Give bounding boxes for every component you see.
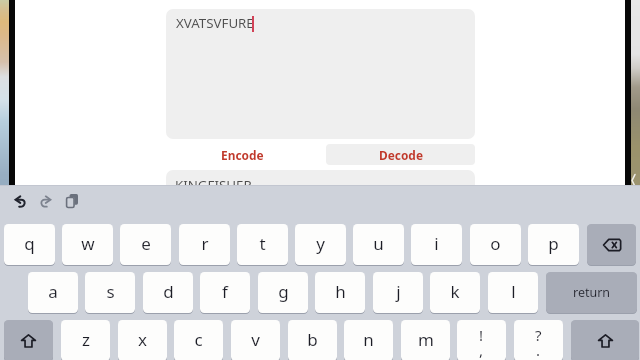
button[interactable]: Return: [546, 272, 637, 313]
button[interactable]: Shift: [4, 320, 53, 360]
staticText: i: [434, 232, 439, 255]
staticText: f: [222, 280, 228, 303]
staticText: g: [278, 280, 289, 303]
button[interactable]: z: [61, 320, 110, 360]
button[interactable]: f: [200, 272, 250, 313]
button[interactable]: j: [373, 272, 423, 313]
button[interactable]: v: [231, 320, 280, 360]
button[interactable]: u: [353, 224, 404, 265]
staticText: l: [511, 280, 516, 303]
button[interactable]: Paste: [66, 194, 78, 208]
button[interactable]: k: [430, 272, 480, 313]
staticText: ?: [535, 325, 542, 345]
staticText: h: [335, 280, 346, 303]
button[interactable]: a: [28, 272, 78, 313]
staticText: !: [479, 325, 484, 345]
button[interactable]: d: [143, 272, 193, 313]
staticText: w: [81, 232, 95, 255]
staticText: z: [82, 328, 90, 351]
staticText: b: [307, 328, 318, 351]
staticText: v: [251, 328, 260, 351]
staticText: u: [373, 232, 384, 255]
button[interactable]: c: [174, 320, 223, 360]
button[interactable]: Shift: [571, 320, 639, 360]
button[interactable]: p: [528, 224, 579, 265]
button[interactable]: KINGFISHER: [166, 170, 475, 215]
button[interactable]: Back: [631, 174, 636, 187]
button[interactable]: !: [457, 320, 506, 360]
staticText: .: [536, 340, 541, 360]
button[interactable]: i: [411, 224, 462, 265]
staticText: return: [573, 284, 611, 301]
button[interactable]: h: [315, 272, 365, 313]
button[interactable]: ?: [514, 320, 563, 360]
button[interactable]: n: [344, 320, 393, 360]
staticText: s: [106, 280, 115, 303]
staticText: r: [201, 232, 209, 255]
button[interactable]: Backspace: [587, 224, 636, 265]
staticText: p: [548, 232, 559, 255]
button[interactable]: s: [85, 272, 135, 313]
staticText: c: [194, 328, 203, 351]
staticText: j: [396, 280, 401, 303]
button[interactable]: t: [237, 224, 288, 265]
button[interactable]: Decode: [326, 144, 475, 165]
button[interactable]: XVATSVFURE: [166, 9, 475, 139]
staticText: m: [418, 328, 434, 351]
staticText: Decode: [379, 147, 423, 163]
staticText: x: [138, 328, 147, 351]
button[interactable]: l: [488, 272, 538, 313]
staticText: d: [163, 280, 174, 303]
staticText: k: [450, 280, 460, 303]
staticText: XVATSVFURE: [176, 14, 254, 32]
button[interactable]: Redo: [40, 196, 51, 207]
staticText: q: [24, 232, 35, 255]
button[interactable]: y: [295, 224, 346, 265]
button[interactable]: o: [470, 224, 521, 265]
staticText: o: [490, 232, 501, 255]
staticText: e: [141, 232, 151, 255]
button[interactable]: g: [258, 272, 308, 313]
button[interactable]: Undo: [15, 196, 26, 207]
staticText: KINGFISHER: [175, 176, 252, 194]
button[interactable]: q: [4, 224, 55, 265]
staticText: ,: [479, 340, 484, 360]
button[interactable]: r: [179, 224, 230, 265]
button[interactable]: x: [118, 320, 167, 360]
staticText: Encode: [221, 147, 264, 163]
button[interactable]: e: [120, 224, 171, 265]
staticText: n: [363, 328, 374, 351]
button[interactable]: Encode: [166, 144, 318, 165]
staticText: t: [259, 232, 266, 255]
button[interactable]: b: [288, 320, 337, 360]
button[interactable]: w: [62, 224, 113, 265]
staticText: a: [48, 280, 58, 303]
button[interactable]: m: [401, 320, 450, 360]
staticText: y: [316, 232, 325, 255]
